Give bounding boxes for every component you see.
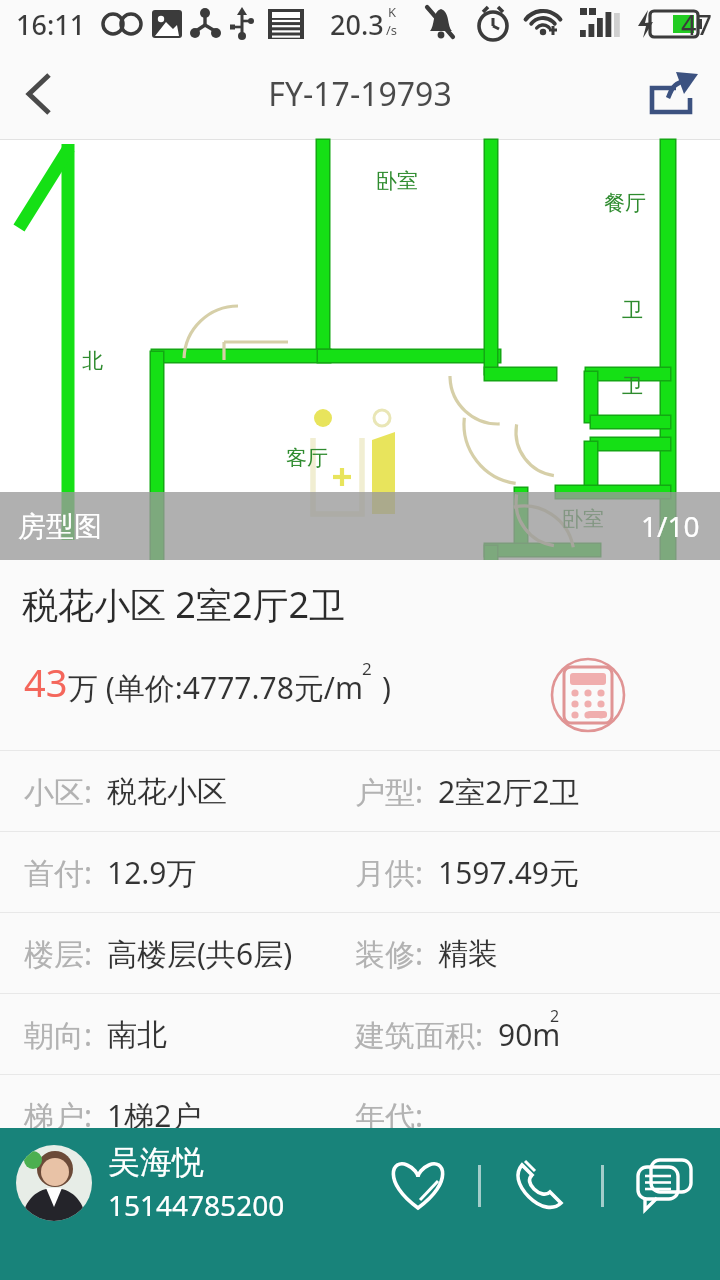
staticText: 2: [550, 1005, 560, 1027]
staticText: 户型:: [355, 771, 424, 812]
staticText: K: [388, 3, 397, 21]
button[interactable]: Message: [628, 1150, 700, 1222]
staticText: 税花小区 2室2厅2卫: [22, 580, 346, 629]
staticText: 15144785200: [108, 1186, 285, 1224]
staticText: 1梯2户: [107, 1095, 202, 1136]
staticText: 1597.49元: [438, 852, 579, 893]
button[interactable]: Share: [640, 62, 704, 126]
staticText: 万 (单价:4777.78元/: [68, 667, 335, 708]
staticText: 90m: [498, 1014, 561, 1055]
button[interactable]: 小区:: [0, 751, 720, 831]
button[interactable]: Back: [0, 57, 74, 131]
staticText: 年代:: [355, 1095, 424, 1136]
staticText: 客厅: [286, 445, 328, 471]
button[interactable]: 梯户:: [0, 1075, 720, 1155]
staticText: /s: [386, 21, 398, 39]
staticText: 2: [362, 657, 372, 680]
staticText: m: [335, 667, 364, 708]
button[interactable]: Floor plan photo: [0, 140, 720, 560]
staticText: 12.9万: [107, 852, 197, 893]
staticText: 1/10: [641, 507, 700, 545]
staticText: 梯户:: [24, 1095, 93, 1136]
staticText: 南北: [107, 1016, 167, 1054]
staticText: 卫: [622, 297, 643, 323]
staticText: 月供:: [355, 852, 424, 893]
staticText: 吴海悦: [108, 1142, 204, 1182]
staticText: 卫: [622, 373, 643, 399]
staticText: 餐厅: [604, 190, 646, 216]
button[interactable]: 楼层:: [0, 913, 720, 993]
button[interactable]: Favorite: [382, 1150, 454, 1222]
button[interactable]: 朝向:: [0, 994, 720, 1074]
staticText: 朝向:: [24, 1014, 93, 1055]
staticText: FY-17-19793: [268, 72, 452, 116]
staticText: 税花小区: [107, 773, 227, 811]
staticText: 16:11: [16, 6, 86, 43]
staticText: 43: [24, 656, 68, 708]
button[interactable]: 首付:: [0, 832, 720, 912]
staticText: 卧室: [562, 506, 604, 532]
staticText: 建筑面积:: [355, 1014, 484, 1055]
staticText: 房型图: [18, 509, 102, 544]
staticText: 首付:: [24, 852, 93, 893]
staticText: 高楼层(共6层): [107, 933, 293, 974]
button[interactable]: Call: [505, 1150, 577, 1222]
button[interactable]: Mortgage calculator: [549, 656, 627, 734]
staticText: 2室2厅2卫: [438, 771, 580, 812]
staticText: 小区:: [24, 771, 93, 812]
staticText: ): [382, 667, 391, 708]
staticText: 20.3: [330, 6, 384, 43]
button[interactable]: 吴海悦: [16, 1142, 285, 1224]
staticText: 装修:: [355, 933, 424, 974]
staticText: 北: [82, 348, 103, 374]
staticText: 精装: [438, 935, 498, 973]
staticText: 47: [681, 6, 712, 43]
staticText: 卧室: [376, 168, 418, 194]
staticText: 楼层:: [24, 933, 93, 974]
